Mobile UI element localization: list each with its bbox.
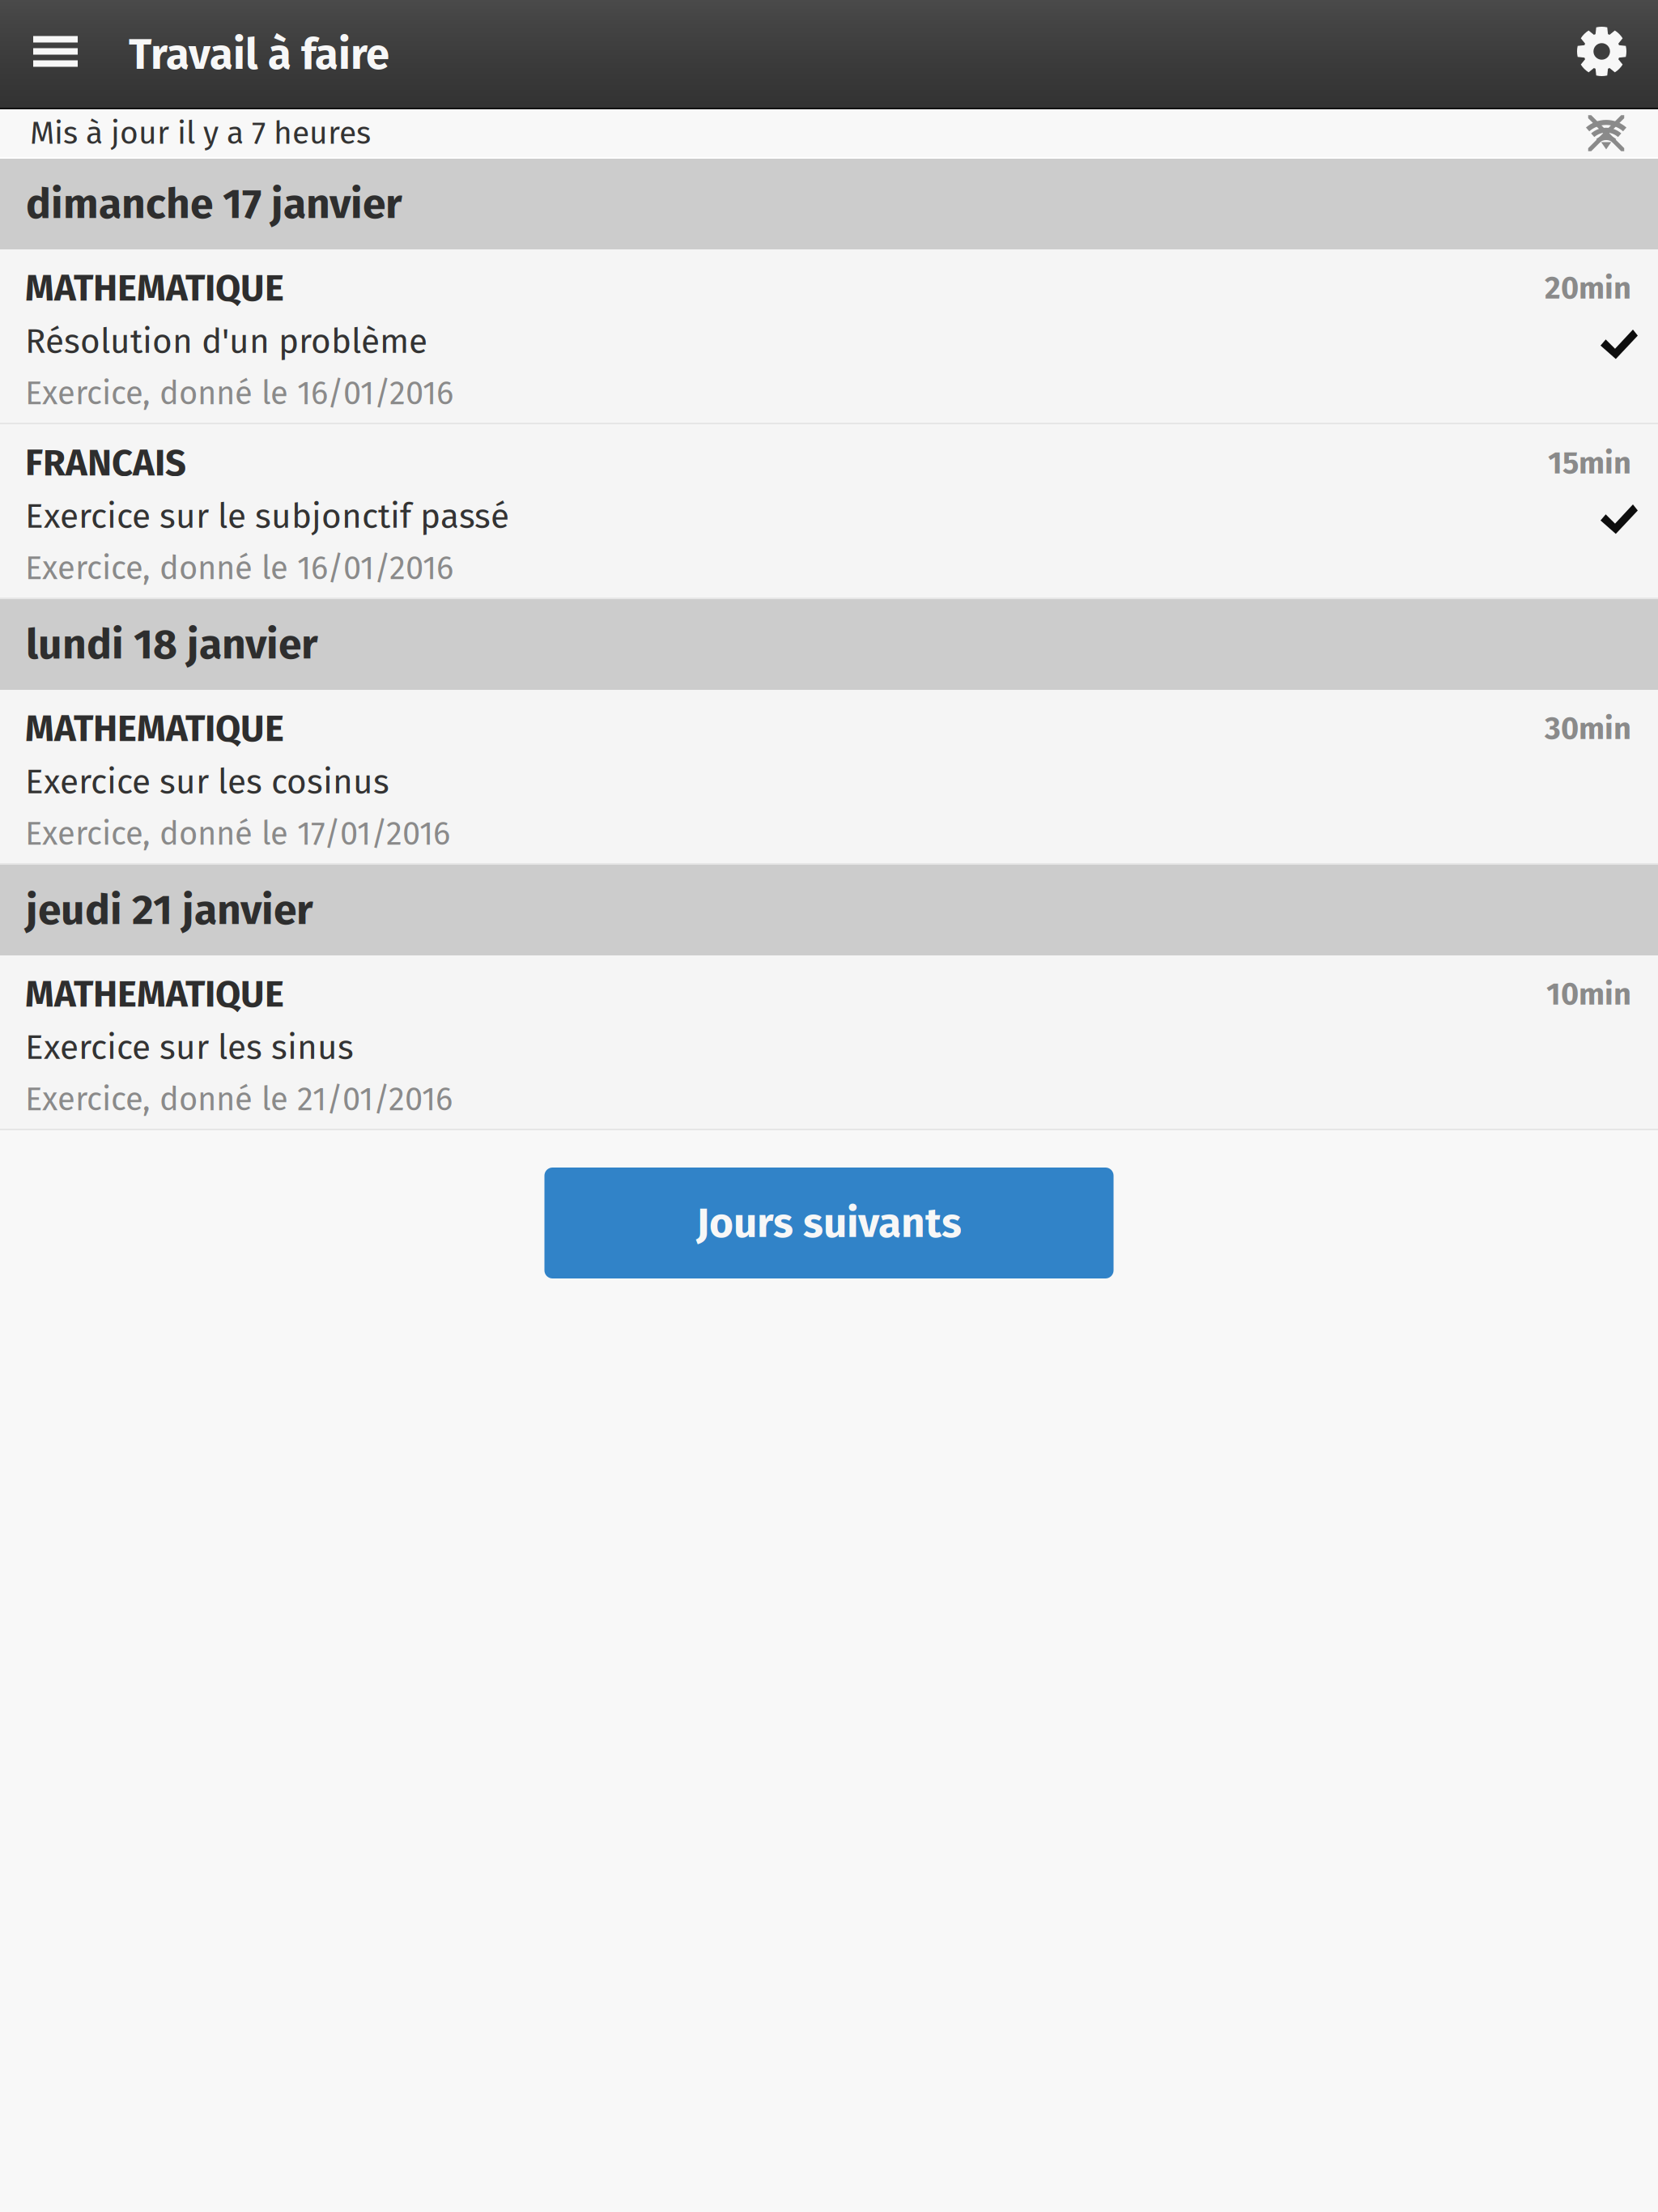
staticText: Jours suivants: [696, 1198, 962, 1248]
staticText: FRANCAIS: [25, 441, 186, 485]
staticText: 30min: [1545, 710, 1631, 747]
staticText: 10min: [1546, 976, 1631, 1013]
staticText: Travail à faire: [129, 29, 389, 80]
staticText: Exercice, donné le 16/01/2016: [25, 374, 453, 413]
staticText: Exercice, donné le 21/01/2016: [25, 1080, 453, 1119]
staticText: Résolution d'un problème: [25, 321, 427, 362]
staticText: jeudi 21 janvier: [26, 885, 313, 935]
staticText: dimanche 17 janvier: [26, 179, 402, 229]
button[interactable]: MATHEMATIQUE: [0, 690, 1658, 863]
button[interactable]: Jours suivants: [544, 1168, 1114, 1278]
staticText: Exercice sur les sinus: [25, 1027, 354, 1068]
staticText: 20min: [1545, 270, 1631, 307]
staticText: 15min: [1548, 445, 1631, 482]
button[interactable]: FRANCAIS: [0, 424, 1658, 598]
staticText: Mis à jour il y a 7 heures: [30, 114, 371, 152]
staticText: MATHEMATIQUE: [25, 707, 284, 751]
staticText: Exercice, donné le 17/01/2016: [25, 815, 450, 853]
staticText: MATHEMATIQUE: [25, 972, 284, 1016]
staticText: Exercice, donné le 16/01/2016: [25, 549, 453, 588]
staticText: Exercice sur le subjonctif passé: [25, 496, 509, 537]
button[interactable]: MATHEMATIQUE: [0, 955, 1658, 1129]
staticText: Exercice sur les cosinus: [25, 761, 389, 802]
staticText: MATHEMATIQUE: [25, 266, 284, 310]
button[interactable]: Menu: [0, 0, 129, 109]
staticText: lundi 18 janvier: [26, 619, 318, 670]
button[interactable]: MATHEMATIQUE: [0, 249, 1658, 423]
button[interactable]: Réglages: [1577, 0, 1658, 109]
